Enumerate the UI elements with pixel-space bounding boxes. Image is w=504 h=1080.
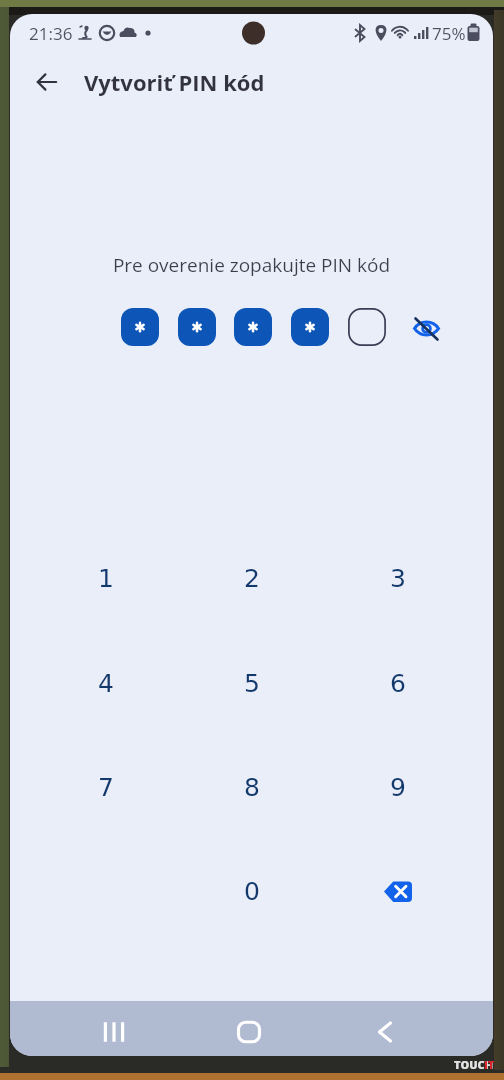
button[interactable]: Recents [83, 1004, 144, 1056]
staticText: 4 [98, 669, 114, 698]
button[interactable]: 6 [343, 638, 453, 728]
staticText: 9 [390, 773, 406, 802]
staticText: 8 [244, 773, 260, 802]
button[interactable]: Home [218, 1004, 279, 1056]
staticText: 1 [98, 564, 114, 593]
button[interactable]: 3 [343, 533, 453, 623]
button[interactable]: Back [353, 1004, 414, 1056]
button[interactable]: Back [27, 62, 67, 102]
staticText: 3 [390, 564, 406, 593]
button[interactable]: 5 [197, 638, 307, 728]
button[interactable]: 0 [197, 846, 307, 936]
button[interactable]: Backspace [343, 846, 453, 936]
staticText: 21:36 [29, 22, 73, 45]
button[interactable]: 1 [51, 533, 161, 623]
button[interactable]: 7 [51, 742, 161, 832]
staticText: 7 [98, 773, 114, 802]
staticText: 6 [390, 669, 406, 698]
staticText: 75% [432, 22, 466, 45]
staticText: Vytvoriť PIN kód [84, 67, 265, 97]
button[interactable]: 9 [343, 742, 453, 832]
staticText: 2 [244, 564, 260, 593]
button[interactable]: Show PIN [410, 312, 443, 345]
staticText: Pre overenie zopakujte PIN kód [10, 252, 493, 278]
button[interactable]: 8 [197, 742, 307, 832]
button[interactable]: 4 [51, 638, 161, 728]
button[interactable]: 2 [197, 533, 307, 623]
staticText: TOUCH [454, 1057, 494, 1072]
staticText: 5 [244, 669, 260, 698]
staticText: 0 [244, 877, 260, 906]
staticText: IT [484, 1057, 495, 1072]
